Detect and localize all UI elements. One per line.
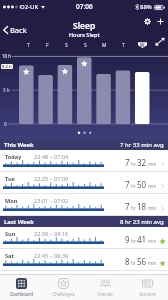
- staticText: 5 h: [3, 87, 10, 93]
- button[interactable]: Friends: [84, 275, 126, 300]
- staticText: 0: [4, 121, 7, 127]
- staticText: Mon: [5, 197, 18, 205]
- staticText: 8: [125, 256, 130, 267]
- staticText: Back: [10, 25, 27, 35]
- staticText: 22:45 – 08:39: [34, 252, 69, 260]
- staticText: Account: [139, 291, 156, 297]
- staticText: Sat: [5, 252, 14, 260]
- staticText: Friends: [97, 291, 113, 297]
- staticText: 7 hr 33 min avg: [120, 141, 164, 149]
- button[interactable]: Settings: [142, 16, 153, 27]
- button[interactable]: Fri: [0, 271, 168, 293]
- staticText: 07:06: [76, 2, 93, 11]
- staticText: 8.2 h: [2, 64, 12, 69]
- staticText: 50: [137, 179, 147, 190]
- staticText: W: [140, 42, 145, 48]
- staticText: 7: [125, 157, 130, 168]
- staticText: hr: [131, 238, 136, 244]
- staticText: 88%: [140, 3, 152, 11]
- staticText: F: [46, 42, 49, 49]
- button[interactable]: Back: [0, 22, 32, 38]
- staticText: 18: [137, 201, 147, 212]
- staticText: Hours Slept: [69, 31, 100, 38]
- staticText: 41: [137, 234, 147, 245]
- staticText: S: [65, 42, 68, 49]
- staticText: min: [148, 282, 157, 288]
- staticText: 10 h: [2, 53, 12, 59]
- staticText: 22:48 – 07:04: [34, 153, 69, 161]
- staticText: Fri: [5, 274, 13, 282]
- staticText: 9: [125, 234, 130, 245]
- staticText: S: [84, 42, 87, 49]
- staticText: T: [122, 42, 125, 49]
- button[interactable]: Account: [126, 275, 168, 300]
- button[interactable]: Sun: [0, 227, 168, 249]
- staticText: min: [148, 161, 157, 167]
- staticText: hr: [131, 183, 136, 189]
- staticText: hr: [131, 205, 136, 211]
- staticText: min: [148, 260, 157, 266]
- staticText: M: [102, 42, 107, 49]
- staticText: T: [27, 42, 30, 49]
- staticText: 23:01 – 07:02: [34, 197, 69, 205]
- staticText: Tue: [5, 175, 15, 183]
- staticText: Dashboard: [10, 291, 33, 297]
- staticText: min: [148, 238, 157, 244]
- button[interactable]: Add: [155, 16, 166, 27]
- button[interactable]: Challenges: [42, 275, 84, 300]
- staticText: 22:25 – 07:09: [34, 175, 69, 183]
- staticText: 22:59 – 09:16: [34, 230, 69, 238]
- staticText: 29: [137, 278, 147, 289]
- button[interactable]: Sat: [0, 249, 168, 271]
- staticText: Today: [5, 153, 22, 161]
- staticText: Challenges: [52, 291, 75, 297]
- staticText: Sleep: [73, 20, 96, 32]
- button[interactable]: Mon: [0, 194, 168, 216]
- button[interactable]: Dashboard: [0, 275, 42, 300]
- staticText: O2-UK: [20, 3, 39, 11]
- staticText: 7: [125, 179, 130, 190]
- staticText: hr: [131, 161, 136, 167]
- staticText: 7: [125, 201, 130, 212]
- button[interactable]: Expand chart: [154, 37, 166, 49]
- staticText: min: [148, 205, 157, 211]
- staticText: 23:35 – 07:04: [34, 274, 69, 282]
- staticText: Last Week: [4, 218, 34, 226]
- button[interactable]: Tue: [0, 172, 168, 194]
- button[interactable]: Today: [0, 150, 168, 172]
- staticText: 8 hr 23 min avg: [120, 218, 164, 226]
- staticText: 56: [137, 256, 147, 267]
- staticText: 32: [137, 157, 147, 168]
- staticText: This Week: [4, 141, 34, 149]
- staticText: hr: [131, 260, 136, 266]
- staticText: Sun: [5, 230, 16, 238]
- staticText: min: [148, 183, 157, 189]
